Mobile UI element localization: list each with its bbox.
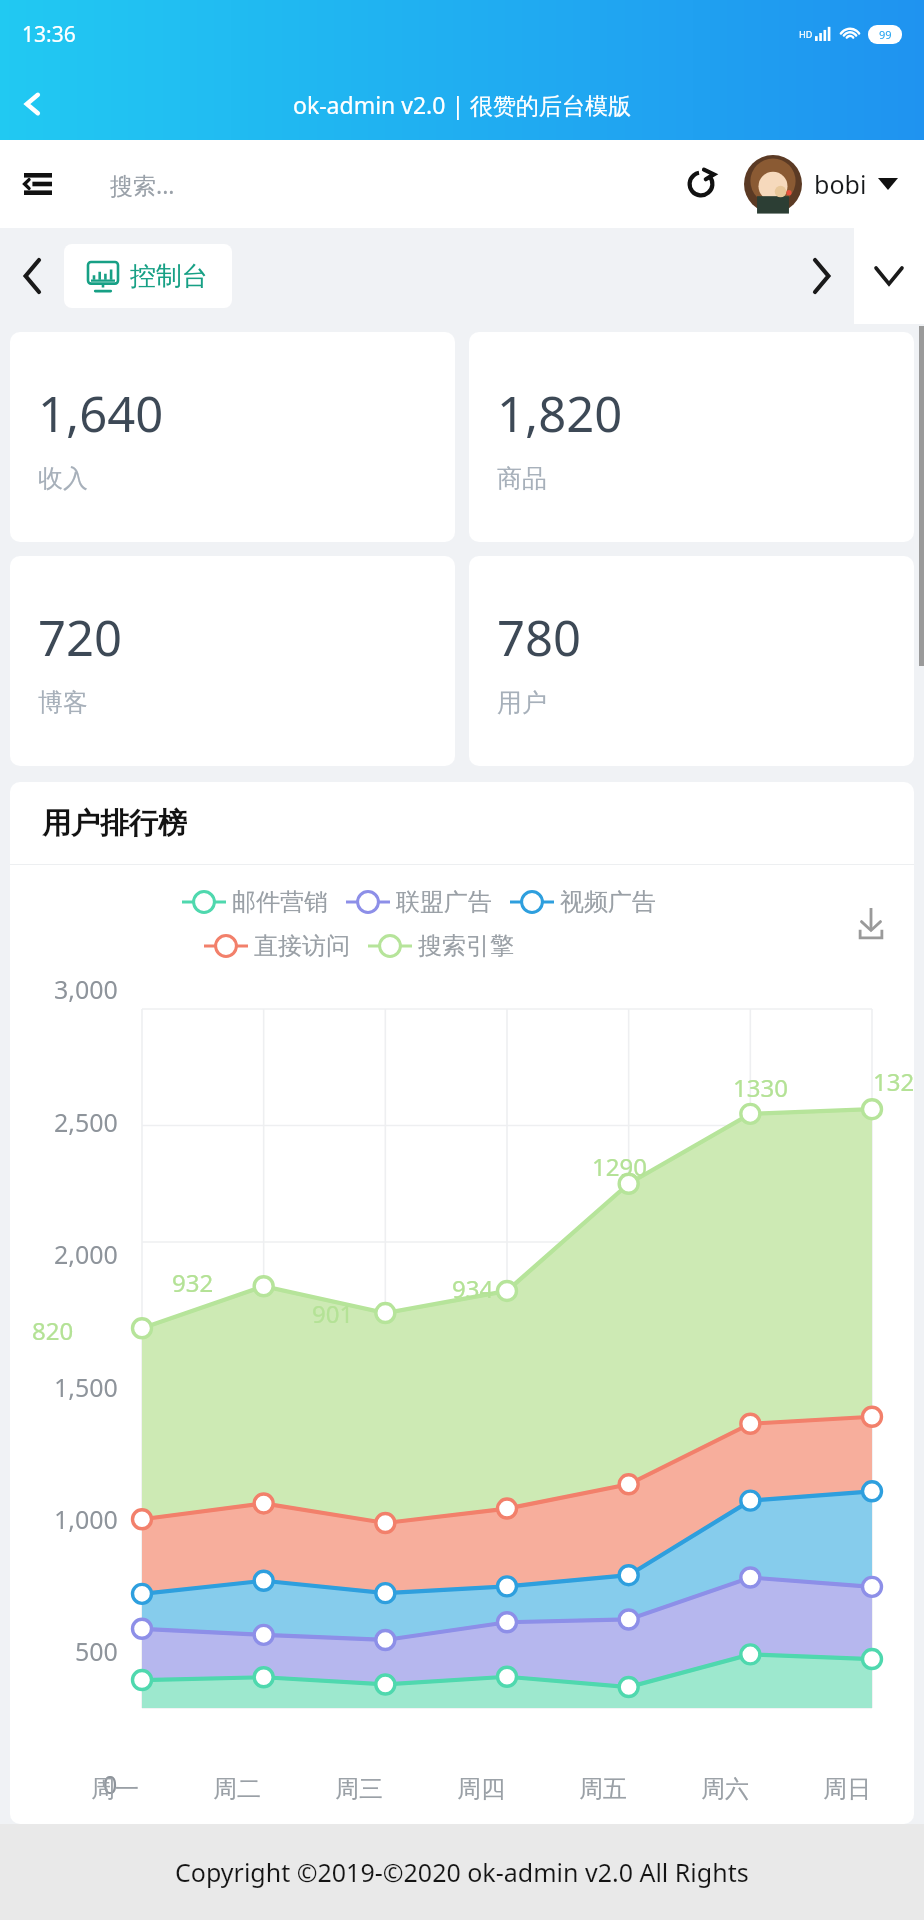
staticText: 联盟广告 [396,887,492,917]
button[interactable]: 1,820 [469,332,914,542]
button[interactable]: bobi [744,140,898,228]
staticText: 视频广告 [560,887,656,917]
button[interactable]: 控制台 [64,244,232,308]
staticText: 控制台 [130,260,208,293]
button[interactable]: Previous tab [0,228,64,324]
button[interactable]: 搜索... [76,140,658,228]
staticText: 邮件营销 [232,887,328,917]
staticText: 1330 [733,1071,788,1104]
staticText: ok-admin v2.0 | 很赞的后台模版 [293,89,632,120]
staticText: 0 [103,1767,118,1801]
button[interactable]: Download chart [828,887,914,963]
staticText: 周一 [91,1774,139,1804]
staticText: 3,000 [54,972,118,1006]
staticText: 周三 [335,1774,383,1804]
staticText: 901 [312,1297,354,1330]
staticText: Copyright ©2019-©2020 ok-admin v2.0 All … [175,1855,749,1889]
staticText: 1,500 [54,1370,118,1404]
staticText: 周六 [701,1774,749,1804]
staticText: 1320 [873,1065,914,1098]
staticText: 934 [452,1272,494,1305]
staticText: 1290 [592,1150,647,1183]
staticText: 搜索... [110,169,175,200]
button[interactable]: Next tab [790,228,854,324]
staticText: 1,640 [38,380,164,447]
staticText: 1,820 [497,380,623,447]
staticText: 720 [38,604,123,671]
staticText: 收入 [38,463,88,494]
button[interactable]: 720 [10,556,455,766]
staticText: 周二 [213,1774,261,1804]
staticText: 用户 [497,687,547,718]
button[interactable]: Menu [0,140,76,228]
staticText: 2,000 [54,1237,118,1271]
button[interactable]: 1,640 [10,332,455,542]
staticText: bobi [814,167,867,201]
staticText: 搜索引擎 [418,931,514,961]
button[interactable]: More tabs [854,228,924,324]
staticText: 用户排行榜 [42,805,187,842]
staticText: 99 [879,27,892,42]
staticText: 周日 [823,1774,871,1804]
staticText: 博客 [38,687,88,718]
staticText: 932 [172,1266,214,1299]
staticText: 周四 [457,1774,505,1804]
staticText: HD [799,28,813,40]
staticText: 780 [497,604,582,671]
staticText: 13:36 [22,20,76,49]
button[interactable]: Back [0,71,66,137]
staticText: 500 [75,1634,118,1668]
staticText: 商品 [497,463,547,494]
staticText: 周五 [579,1774,627,1804]
button[interactable]: Refresh [658,140,744,228]
staticText: 直接访问 [254,931,350,961]
button[interactable]: 780 [469,556,914,766]
staticText: 1,000 [54,1502,118,1536]
staticText: 820 [32,1314,74,1347]
staticText: 2,500 [54,1105,118,1139]
